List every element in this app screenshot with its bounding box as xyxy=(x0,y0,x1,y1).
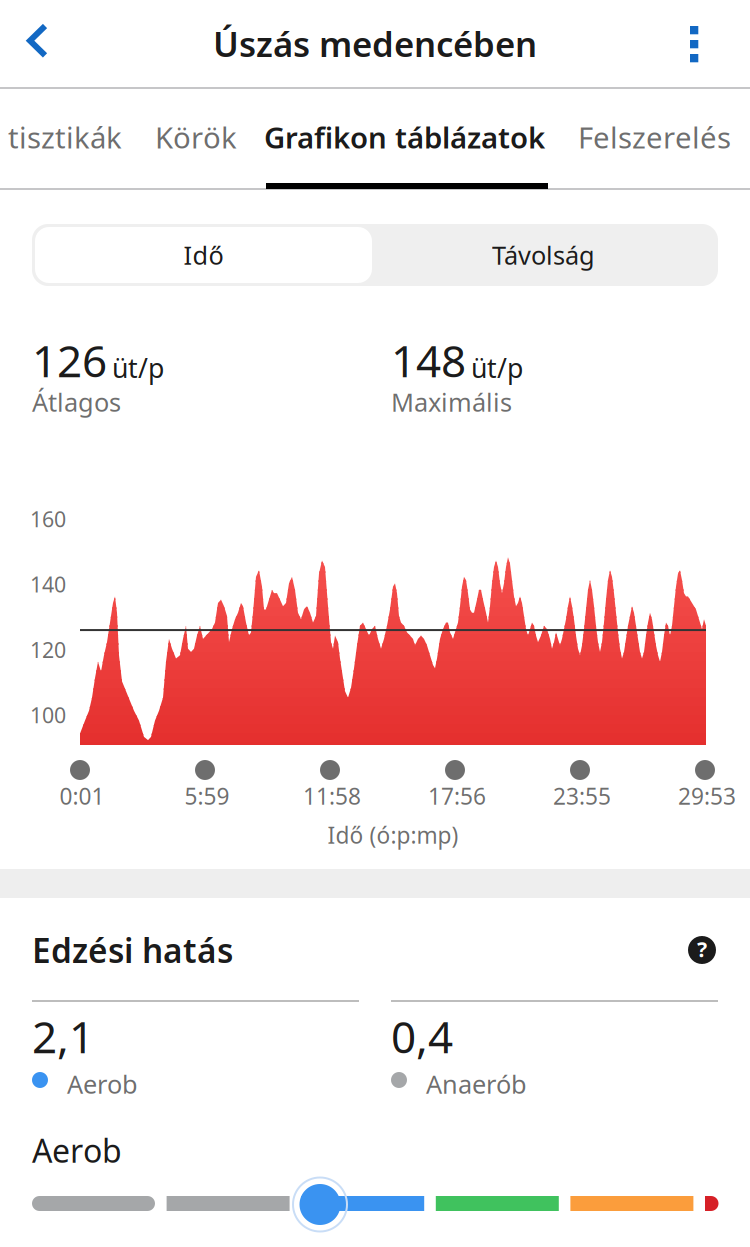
staticText: Körök xyxy=(155,117,237,156)
staticText: 23:55 xyxy=(553,781,611,811)
staticText: ? xyxy=(697,935,707,963)
button[interactable]: More options xyxy=(662,0,742,87)
staticText: Idő xyxy=(183,238,223,272)
staticText: Idő (ó:p:mp) xyxy=(327,820,458,850)
button[interactable]: Grafikon táblázatok xyxy=(264,89,554,185)
button[interactable]: Help xyxy=(674,922,730,978)
staticText: 126 xyxy=(32,331,107,389)
staticText: 17:56 xyxy=(428,781,486,811)
staticText: 2,1 xyxy=(32,1007,94,1065)
staticText: Átlagos xyxy=(32,385,121,419)
staticText: 0:01 xyxy=(59,781,104,811)
staticText: Maximális xyxy=(391,385,512,419)
staticText: Edzési hatás xyxy=(32,928,233,972)
staticText: 100 xyxy=(30,701,66,729)
staticText: Grafikon táblázatok xyxy=(264,117,545,156)
staticText: üt/p xyxy=(112,350,164,385)
staticText: 0,4 xyxy=(391,1007,453,1065)
button[interactable]: Felszerelés xyxy=(578,89,743,185)
staticText: Távolság xyxy=(492,238,595,272)
staticText: Úszás medencében xyxy=(213,20,537,66)
staticText: Aerob xyxy=(32,1129,122,1171)
staticText: 11:58 xyxy=(303,781,361,811)
button[interactable]: tisztikák xyxy=(8,89,138,185)
staticText: Felszerelés xyxy=(578,117,731,156)
staticText: tisztikák xyxy=(8,117,122,156)
staticText: 140 xyxy=(30,570,66,598)
staticText: üt/p xyxy=(471,350,523,385)
button[interactable]: Back xyxy=(0,0,76,87)
staticText: Aerob xyxy=(67,1067,138,1101)
button[interactable]: Távolság xyxy=(372,227,715,283)
button[interactable]: Idő xyxy=(35,227,372,283)
staticText: 160 xyxy=(30,505,66,533)
button[interactable]: Körök xyxy=(155,89,245,185)
staticText: Anaerób xyxy=(426,1067,527,1101)
staticText: 120 xyxy=(30,635,66,664)
staticText: 29:53 xyxy=(678,781,736,811)
staticText: 148 xyxy=(391,331,466,389)
staticText: 5:59 xyxy=(184,781,229,811)
